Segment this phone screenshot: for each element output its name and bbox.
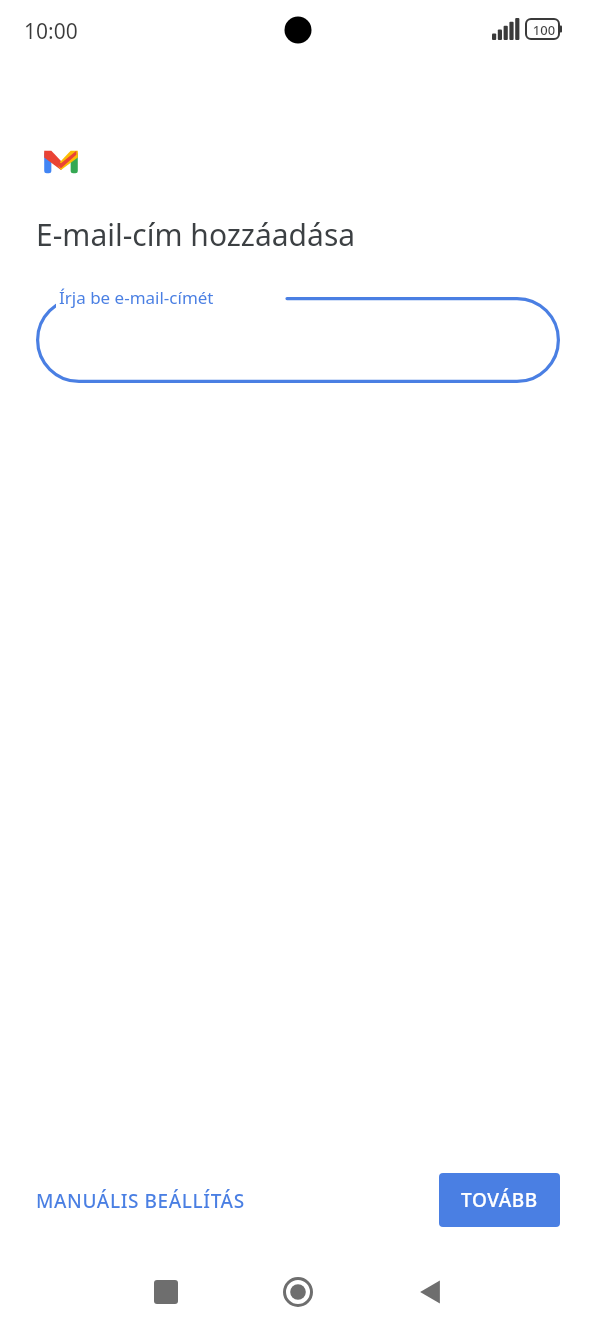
button[interactable]: TOVÁBB <box>439 1173 560 1227</box>
staticText: E-mail-cím hozzáadása <box>36 214 356 255</box>
staticText: Írja be e-mail-címét <box>59 286 214 309</box>
button[interactable] <box>36 297 560 383</box>
staticText: TOVÁBB <box>461 1187 538 1213</box>
staticText: 100 <box>530 21 558 39</box>
staticText: 10:00 <box>24 17 78 46</box>
button[interactable]: MANUÁLIS BEÁLLÍTÁS <box>22 1178 259 1224</box>
button[interactable]: Back <box>406 1268 454 1316</box>
button[interactable]: Home <box>274 1268 322 1316</box>
button[interactable]: Recent apps <box>142 1268 190 1316</box>
